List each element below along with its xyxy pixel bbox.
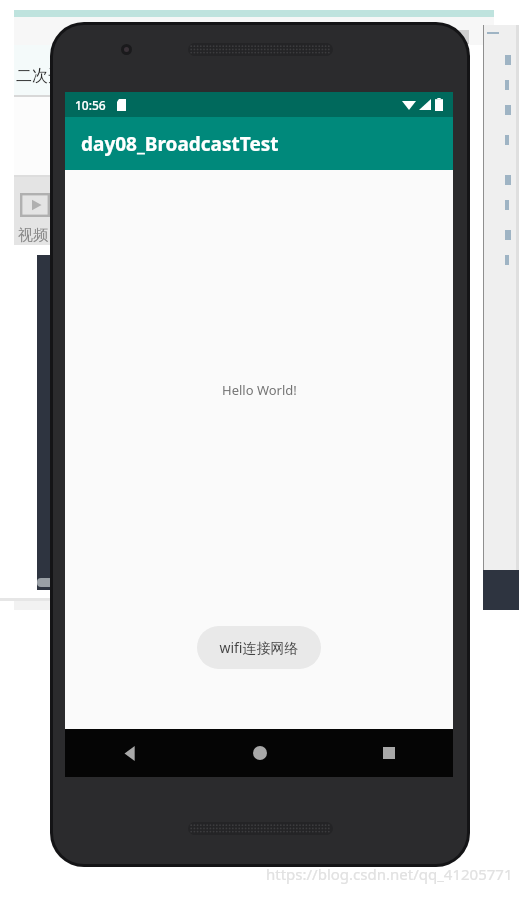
staticText: day08_BroadcastTest <box>81 131 279 157</box>
staticText: 10:56 <box>75 97 106 113</box>
button[interactable]: Back <box>65 729 195 777</box>
staticText: 二次开 <box>16 66 64 86</box>
button[interactable]: Home <box>195 729 324 777</box>
button[interactable]: Recents <box>324 729 453 777</box>
staticText: https://blog.csdn.net/qq_41205771 <box>266 864 513 884</box>
button[interactable]: wifi连接网络 <box>197 626 321 669</box>
staticText: Hello World! <box>222 381 297 399</box>
staticText: 视频 <box>18 226 48 245</box>
staticText: wifi连接网络 <box>219 638 299 657</box>
